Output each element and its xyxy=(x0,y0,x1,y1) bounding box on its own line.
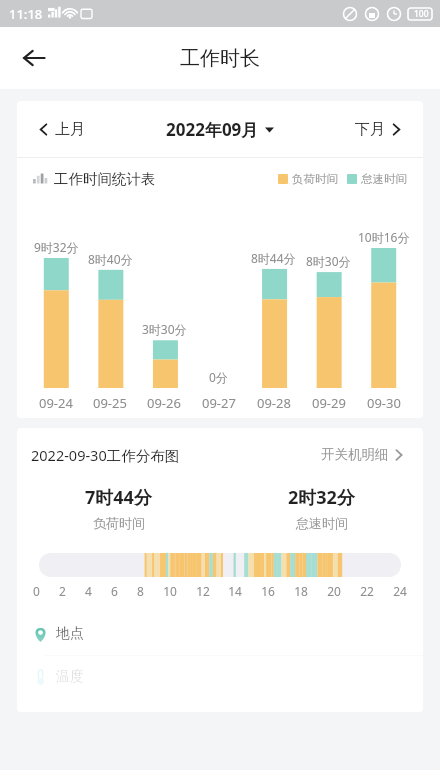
staticText: 3时30分 xyxy=(142,321,187,337)
staticText: 2 xyxy=(59,583,66,599)
staticText: 8 xyxy=(137,583,144,599)
staticText: 怠速时间 xyxy=(361,172,407,186)
staticText: 20 xyxy=(327,583,341,599)
staticText: 9时32分 xyxy=(34,239,79,255)
button[interactable]: 开关机明细 xyxy=(317,442,409,467)
staticText: 16 xyxy=(261,583,275,599)
staticText: 14 xyxy=(228,583,242,599)
staticText: 下月 xyxy=(355,120,385,139)
staticText: 09-25 xyxy=(93,394,127,412)
staticText: 09-26 xyxy=(147,394,181,412)
staticText: 负荷时间 xyxy=(292,172,338,186)
staticText: 2022-09-30工作分布图 xyxy=(31,445,180,465)
staticText: 18 xyxy=(294,583,308,599)
staticText: 10时16分 xyxy=(358,229,410,245)
staticText: 09-30 xyxy=(367,394,401,412)
staticText: 100 xyxy=(414,8,429,20)
staticText: 4 xyxy=(85,583,92,599)
staticText: 地点 xyxy=(56,625,84,643)
staticText: 怠速时间 xyxy=(296,515,348,531)
staticText: 工作时长 xyxy=(180,46,260,71)
staticText: 工作时间统计表 xyxy=(54,170,156,188)
staticText: 0 xyxy=(33,583,40,599)
staticText: 8时44分 xyxy=(251,250,296,266)
button[interactable]: 2022年09月 xyxy=(160,112,280,147)
staticText: 上月 xyxy=(55,120,85,139)
staticText: 7时44分 xyxy=(85,485,152,510)
staticText: 09-27 xyxy=(202,394,236,412)
staticText: 6 xyxy=(111,583,118,599)
staticText: 开关机明细 xyxy=(321,446,389,463)
button[interactable]: Back xyxy=(10,34,58,82)
staticText: 8时30分 xyxy=(306,253,351,269)
button[interactable]: 下月 xyxy=(349,114,409,145)
button[interactable]: 地点 xyxy=(17,613,423,655)
staticText: 2时32分 xyxy=(288,485,355,510)
staticText: 10 xyxy=(163,583,177,599)
staticText: 22 xyxy=(360,583,374,599)
staticText: 负荷时间 xyxy=(93,515,145,531)
staticText: 09-29 xyxy=(312,394,346,412)
staticText: 11:18 xyxy=(9,5,43,23)
staticText: 0分 xyxy=(209,369,228,385)
staticText: 09-24 xyxy=(39,394,73,412)
staticText: 24 xyxy=(393,583,407,599)
button[interactable]: 上月 xyxy=(31,114,91,145)
staticText: 温度 xyxy=(56,668,84,686)
staticText: 09-28 xyxy=(257,394,291,412)
staticText: 2022年09月 xyxy=(166,118,259,141)
staticText: 12 xyxy=(196,583,210,599)
staticText: 8时40分 xyxy=(88,251,133,267)
